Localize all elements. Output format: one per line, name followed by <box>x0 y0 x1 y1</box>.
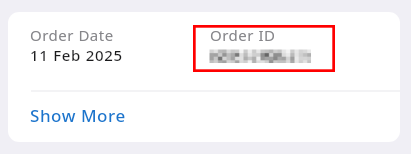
staticText: Show More <box>30 104 126 127</box>
button[interactable]: Show More <box>22 98 134 133</box>
staticText: Order Date <box>30 25 114 45</box>
staticText: 11 Feb 2025 <box>30 45 123 65</box>
staticText: Order ID <box>210 25 276 45</box>
